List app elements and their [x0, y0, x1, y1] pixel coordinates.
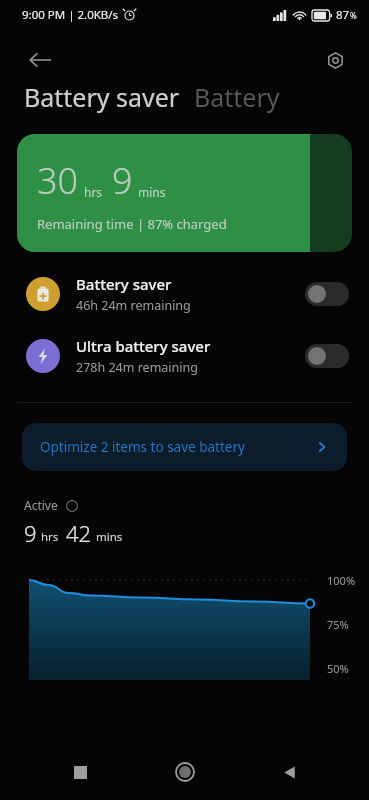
staticText: Optimize 2 items to save battery: [40, 438, 315, 456]
staticText: Remaining time | 87% charged: [37, 215, 227, 233]
staticText: 75%: [327, 617, 349, 632]
button[interactable]: Ultra battery saver: [0, 336, 369, 376]
staticText: 87: [336, 7, 350, 23]
staticText: 9:00 PM | 2.0KB/s: [22, 7, 119, 23]
staticText: %: [350, 10, 357, 21]
button[interactable]: Recent apps: [56, 748, 104, 796]
staticText: Ultra battery saver: [76, 336, 211, 356]
button[interactable]: Home: [161, 748, 209, 796]
button[interactable]: 30: [17, 134, 352, 252]
button[interactable]: Back: [265, 748, 313, 796]
staticText: mins: [138, 184, 166, 200]
staticText: Battery saver: [76, 274, 172, 294]
staticText: 278h 24m remaining: [76, 359, 198, 376]
button[interactable]: Settings: [313, 38, 357, 82]
button[interactable]: Battery: [194, 80, 280, 114]
staticText: mins: [96, 529, 123, 545]
button[interactable]: Battery saver: [0, 274, 369, 314]
staticText: 42: [66, 518, 92, 548]
staticText: 9: [112, 156, 133, 205]
button[interactable]: Optimize 2 items to save battery: [22, 423, 347, 471]
button[interactable]: Back: [18, 38, 62, 82]
staticText: Active: [24, 497, 58, 513]
button[interactable]: Battery saver: [24, 80, 180, 114]
button[interactable]: Toggle Battery saver: [305, 282, 349, 306]
staticText: 46h 24m remaining: [76, 297, 191, 314]
staticText: 50%: [327, 661, 349, 676]
staticText: 30: [37, 156, 79, 205]
staticText: hrs: [41, 529, 59, 545]
staticText: 9: [24, 518, 37, 548]
staticText: 100%: [327, 573, 356, 588]
button[interactable]: Help: [64, 498, 79, 513]
button[interactable]: Toggle Ultra battery saver: [305, 344, 349, 368]
staticText: hrs: [84, 184, 103, 200]
